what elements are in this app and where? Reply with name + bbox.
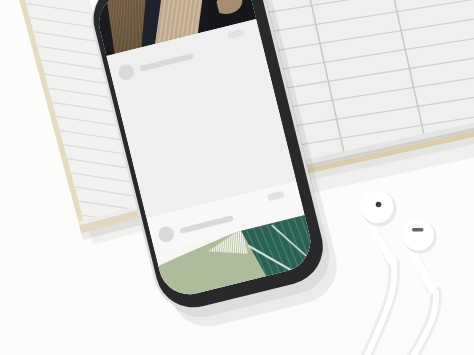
button[interactable]: Smartphone on an open notebook with earp…	[0, 0, 474, 355]
